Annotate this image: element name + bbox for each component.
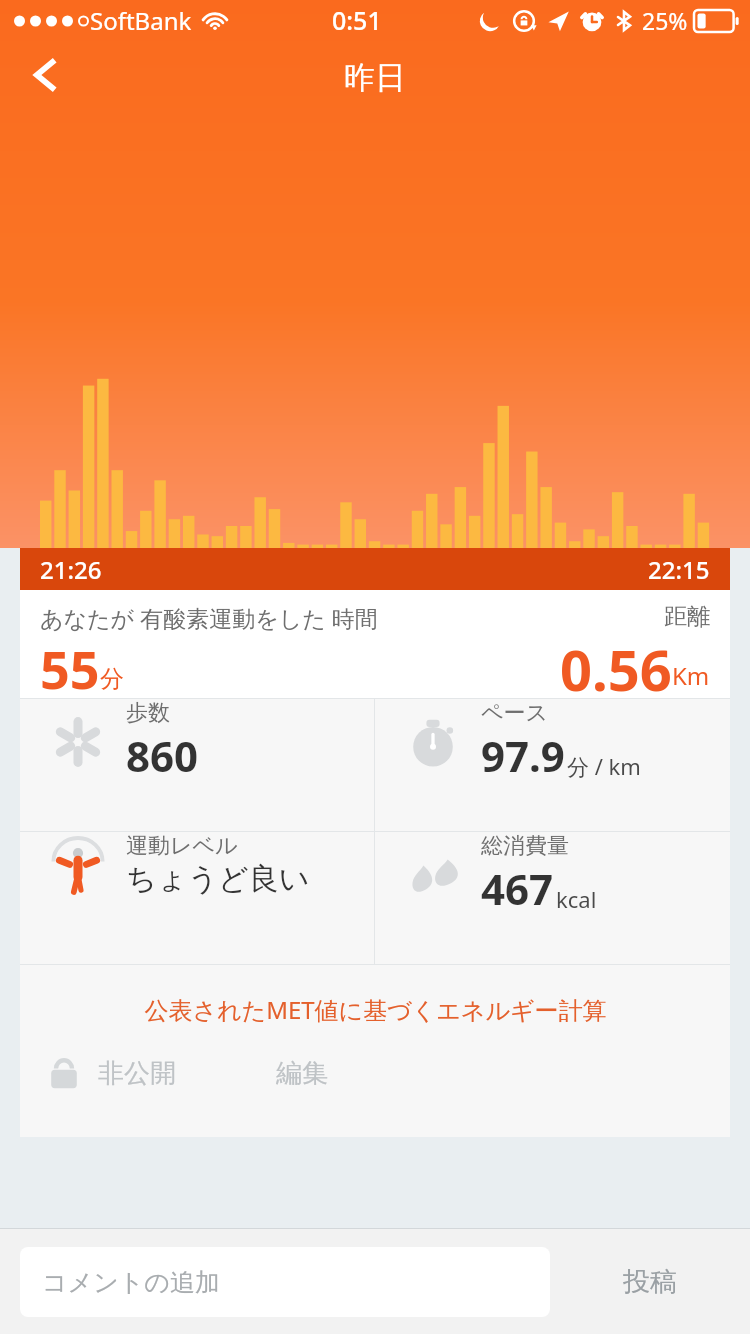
staticText: kcal [556,884,597,914]
staticText: 総消費量 [481,832,569,860]
button[interactable]: 公表されたMET値に基づくエネルギー計算 [20,965,730,1053]
staticText: 860 [126,727,199,784]
button[interactable]: Back [0,40,90,110]
other: Exercise level [48,835,108,895]
staticText: 97.9 [481,727,565,784]
staticText: 非公開 [98,1057,176,1090]
staticText: 運動レベル [126,832,238,860]
staticText: 投稿 [623,1265,677,1299]
staticText: あなたが 有酸素運動をした 時間 [40,602,378,633]
staticText: 歩数 [126,699,170,727]
staticText: ちょうど良い [126,860,310,898]
staticText: Km [672,659,710,692]
other: Calories [403,845,463,905]
staticText: SoftBank [90,4,192,37]
button[interactable]: 非公開 [44,1053,176,1093]
other: Pace [403,712,463,772]
button[interactable]: 編集 [276,1057,328,1090]
staticText: 分 [100,664,124,694]
staticText: 0.56 [560,631,672,698]
button[interactable]: コメントの追加 [20,1247,550,1317]
button[interactable]: Exercise level [20,832,374,898]
button[interactable]: Calories [375,832,730,917]
button[interactable]: Pace [375,699,730,784]
staticText: 0:51 [332,3,382,37]
button[interactable]: 投稿 [550,1247,750,1317]
other: Steps [48,712,108,772]
staticText: コメントの追加 [42,1267,220,1298]
staticText: 22:15 [648,553,710,586]
staticText: 距離 [664,602,710,631]
staticText: ペース [481,699,549,727]
staticText: 公表されたMET値に基づくエネルギー計算 [144,993,607,1026]
staticText: 25% [642,5,688,36]
staticText: 昨日 [344,58,406,97]
staticText: 467 [481,860,554,917]
staticText: 編集 [276,1057,328,1090]
staticText: 21:26 [40,553,102,586]
button[interactable]: Steps [20,699,374,784]
staticText: 55 [40,633,100,698]
staticText: 分 / km [567,751,641,781]
